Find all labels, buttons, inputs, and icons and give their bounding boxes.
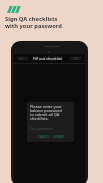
button[interactable]: SUBMIT [53, 135, 65, 139]
staticText: Sign QA checklists with your password [5, 15, 62, 30]
button[interactable]: SUBMIT [70, 57, 82, 61]
button[interactable]: CANCEL [17, 57, 29, 61]
staticText: Fill out checklist [33, 56, 62, 61]
staticText: SUBMIT [53, 135, 65, 139]
staticText: Your password [30, 126, 53, 130]
staticText: CANCEL [38, 135, 50, 139]
staticText: CANCEL [17, 57, 29, 61]
staticText: SUBMIT [70, 57, 82, 61]
staticText: Please enter your kabove password to sub… [30, 104, 63, 122]
button[interactable]: CANCEL [38, 135, 50, 139]
